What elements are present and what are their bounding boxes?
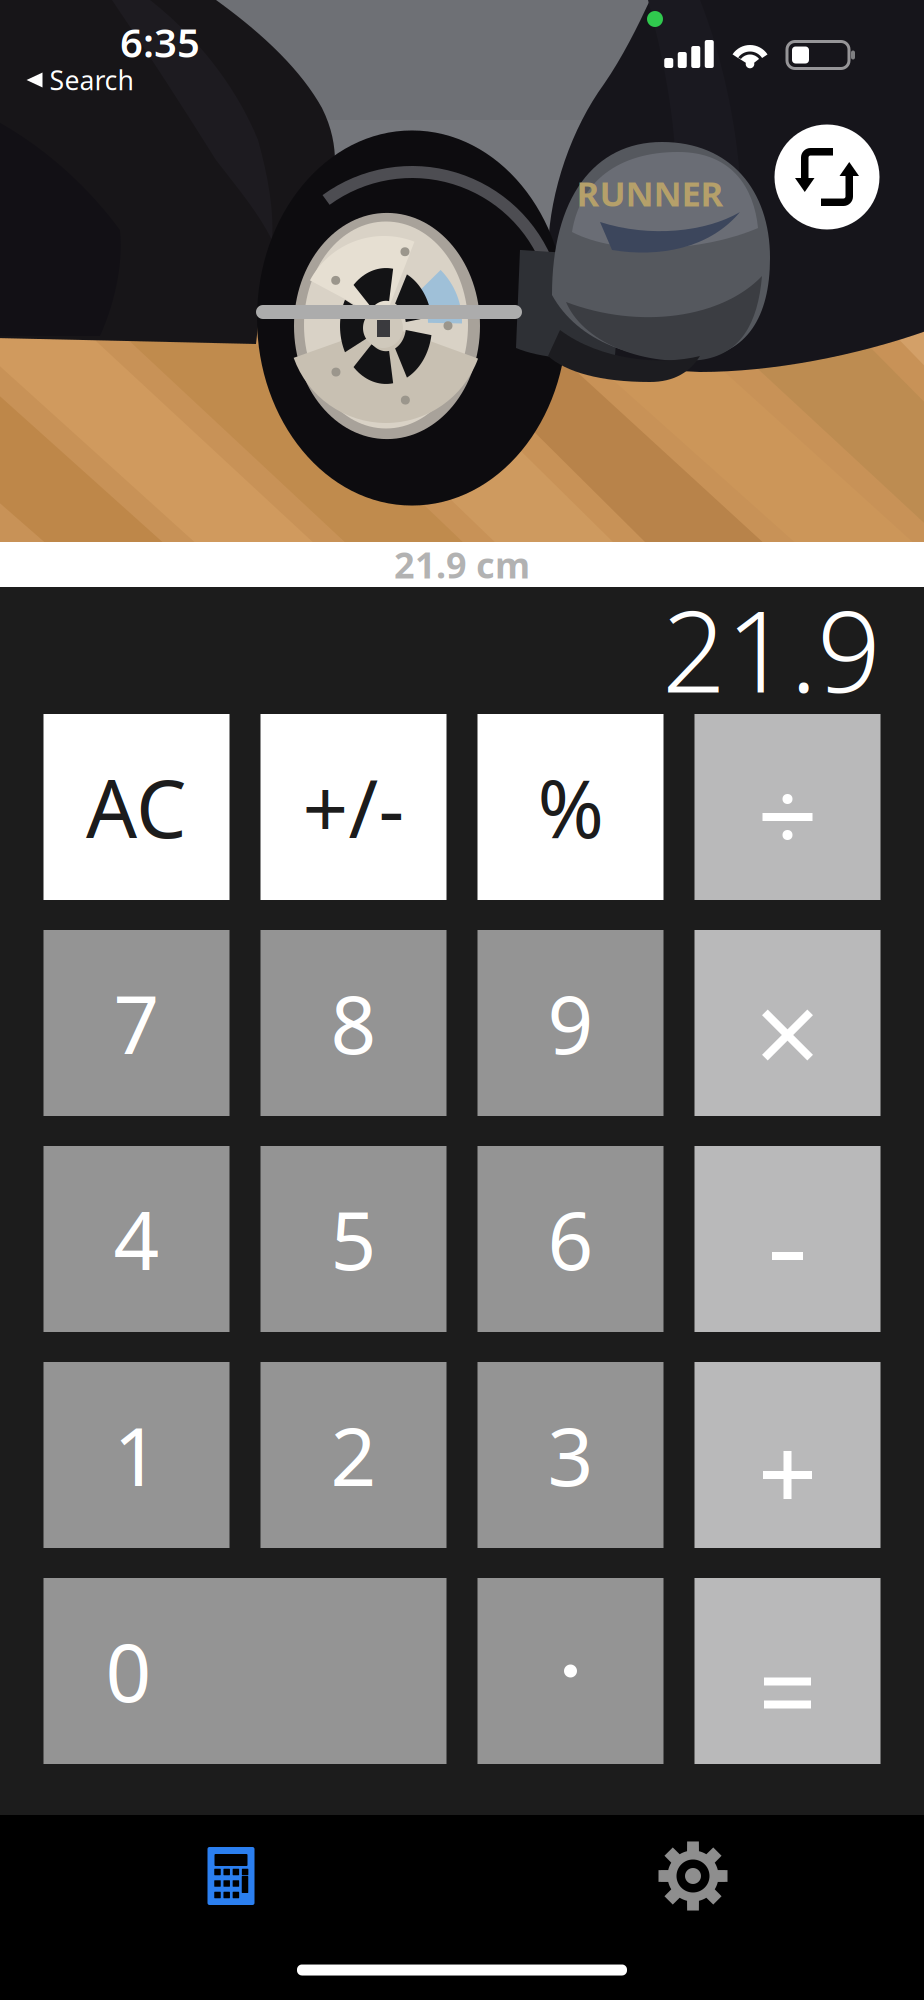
button[interactable]	[694, 1146, 880, 1332]
button[interactable]: %	[477, 714, 663, 900]
button[interactable]	[694, 1362, 880, 1548]
staticText: %	[537, 754, 603, 860]
staticText: 21.9	[662, 575, 881, 723]
button[interactable]: 1	[43, 1362, 229, 1548]
staticText: 6:35	[120, 15, 200, 68]
button[interactable]: 4	[43, 1146, 229, 1332]
button[interactable]: 6	[477, 1146, 663, 1332]
staticText: 2	[330, 1402, 376, 1508]
button[interactable]	[694, 714, 880, 900]
staticText: 9	[547, 970, 593, 1076]
button[interactable]	[477, 1578, 663, 1764]
button[interactable]: Calculator	[0, 1815, 462, 1937]
staticText: RUNNER	[576, 170, 723, 216]
staticText: 3	[547, 1402, 593, 1508]
staticText: 7	[113, 970, 159, 1076]
staticText: 0	[105, 1618, 151, 1724]
button[interactable]: 5	[260, 1146, 446, 1332]
button[interactable]: +/-	[260, 714, 446, 900]
button[interactable]: Search	[18, 54, 141, 106]
button[interactable]: 0	[43, 1578, 446, 1764]
button[interactable]: AC	[43, 714, 229, 900]
button[interactable]: 2	[260, 1362, 446, 1548]
staticText: AC	[86, 754, 187, 860]
staticText: 8	[330, 970, 376, 1076]
staticText: 6	[547, 1186, 593, 1292]
staticText: Search	[49, 62, 133, 98]
button[interactable]	[694, 930, 880, 1116]
button[interactable]: 3	[477, 1362, 663, 1548]
staticText: 1	[113, 1402, 159, 1508]
staticText: +/-	[302, 754, 404, 860]
button[interactable]	[694, 1578, 880, 1764]
staticText: 5	[330, 1186, 376, 1292]
staticText: 4	[113, 1186, 159, 1292]
button[interactable]: 7	[43, 930, 229, 1116]
staticText: 21.9 cm	[394, 541, 530, 588]
button[interactable]: 9	[477, 930, 663, 1116]
button[interactable]: 8	[260, 930, 446, 1116]
button[interactable]: Flip camera	[774, 124, 879, 229]
button[interactable]: Settings	[462, 1815, 924, 1937]
